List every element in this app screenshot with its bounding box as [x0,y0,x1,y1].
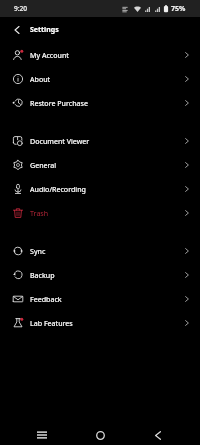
staticText: Document Viewer [30,136,90,146]
button[interactable]: Backup [0,263,200,287]
button[interactable]: Lab Features [0,311,200,335]
staticText: My Account [30,50,69,60]
staticText: About [30,74,51,84]
button[interactable]: Back [5,18,29,42]
staticText: Restore Purchase [30,98,88,108]
button[interactable]: About [0,67,200,91]
staticText: Settings [30,25,59,35]
button[interactable]: Back [144,421,172,445]
button[interactable]: Document Viewer [0,129,200,153]
button[interactable]: Sync [0,239,200,263]
staticText: Backup [30,270,55,280]
button[interactable]: Home [86,421,114,445]
button[interactable]: Audio/Recording [0,177,200,201]
button[interactable]: General [0,153,200,177]
staticText: Lab Features [30,318,73,328]
button[interactable]: Restore Purchase [0,91,200,115]
staticText: Feedback [30,294,62,304]
staticText: Sync [30,246,46,256]
staticText: General [30,160,57,170]
staticText: 9:20 [14,4,28,13]
button[interactable]: Trash [0,201,200,225]
button[interactable]: Recent apps [28,421,56,445]
staticText: 75% [171,4,186,14]
button[interactable]: My Account [0,43,200,67]
staticText: Trash [30,208,49,218]
button[interactable]: Feedback [0,287,200,311]
staticText: Audio/Recording [30,184,86,194]
